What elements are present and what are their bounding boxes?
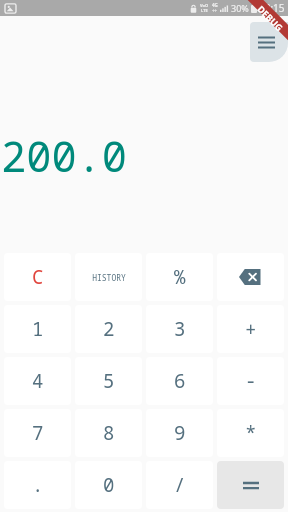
button[interactable]: Menu <box>250 22 288 62</box>
staticText: 30% <box>231 2 249 14</box>
button[interactable]: 2 <box>75 305 142 353</box>
button[interactable]: Equals <box>217 461 284 509</box>
staticText: LTE <box>201 8 208 13</box>
staticText: 4 <box>32 368 44 394</box>
staticText: ++ <box>212 8 218 14</box>
button[interactable]: HISTORY <box>75 253 142 301</box>
staticText: % <box>174 264 186 290</box>
staticText: 0 <box>103 472 115 498</box>
staticText: 9 <box>174 420 186 446</box>
staticText: C <box>32 264 44 290</box>
staticText: * <box>245 420 257 446</box>
staticText: HISTORY <box>92 272 126 283</box>
staticText: 8 <box>103 420 115 446</box>
staticText: / <box>174 472 186 498</box>
button[interactable]: C <box>4 253 71 301</box>
staticText: 2 <box>103 316 115 342</box>
staticText: 4G <box>212 2 218 8</box>
staticText: 5 <box>103 368 115 394</box>
staticText: - <box>245 368 257 394</box>
staticText: 6 <box>174 368 186 394</box>
button[interactable]: 5 <box>75 357 142 405</box>
button[interactable]: % <box>146 253 213 301</box>
staticText: VoO <box>200 3 209 8</box>
staticText: + <box>245 316 257 342</box>
button[interactable]: 8 <box>75 409 142 457</box>
staticText: 1 <box>32 316 44 342</box>
button[interactable]: - <box>217 357 284 405</box>
button[interactable]: Backspace <box>217 253 284 301</box>
button[interactable]: / <box>146 461 213 509</box>
staticText: 3 <box>174 316 186 342</box>
button[interactable]: 3 <box>146 305 213 353</box>
staticText: DEBUG <box>255 3 286 33</box>
button[interactable]: + <box>217 305 284 353</box>
staticText: . <box>32 472 44 498</box>
button[interactable]: 0 <box>75 461 142 509</box>
button[interactable]: * <box>217 409 284 457</box>
button[interactable]: 4 <box>4 357 71 405</box>
button[interactable]: 1 <box>4 305 71 353</box>
staticText: 12:15 <box>259 1 285 15</box>
staticText: 200.0 <box>1 127 128 184</box>
button[interactable]: 6 <box>146 357 213 405</box>
button[interactable]: 9 <box>146 409 213 457</box>
staticText: 7 <box>32 420 44 446</box>
button[interactable]: 7 <box>4 409 71 457</box>
button[interactable]: . <box>4 461 71 509</box>
